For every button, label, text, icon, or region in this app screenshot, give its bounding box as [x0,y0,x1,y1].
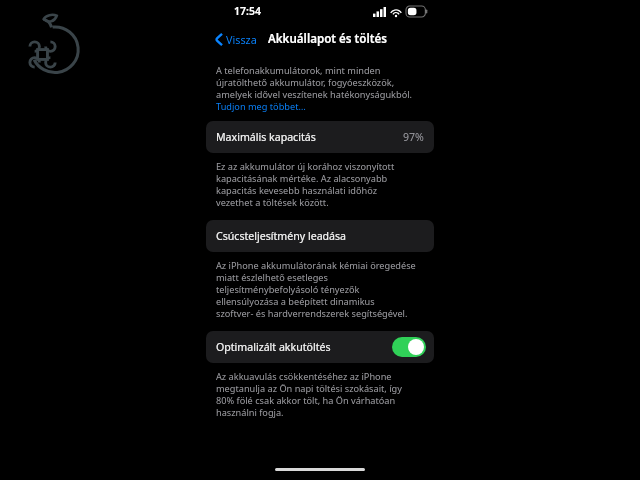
staticText: A telefonakkumulátorok, mint minden újra… [216,64,413,100]
staticText: Az iPhone akkumulátorának kémiai öregedé… [216,259,416,319]
staticText: Az akkuavulás csökkentéséhez az iPhone m… [216,370,402,418]
button[interactable]: Maximális kapacitás [206,121,434,153]
staticText: Csúcsteljesítmény leadása [216,229,347,243]
button[interactable]: Optimalizált akkutöltés [206,331,434,363]
button[interactable]: Csúcsteljesítmény leadása [206,220,434,252]
button[interactable]: Optimalizált akkutöltés kapcsoló [392,337,426,357]
staticText: Optimalizált akkutöltés [216,340,331,354]
staticText: Tudjon meg többet… [216,100,306,113]
button[interactable]: Vissza [212,30,260,49]
other: Vissza [215,33,223,46]
staticText: 17:54 [234,4,261,18]
staticText: Maximális kapacitás [216,130,316,144]
button[interactable]: Tudjon meg többet… [216,100,306,113]
staticText: 97% [403,130,424,144]
staticText: Ez az akkumulátor új korához viszonyítot… [216,160,395,208]
staticText: Akkuállapot és töltés [268,31,387,47]
staticText: Vissza [226,32,257,47]
